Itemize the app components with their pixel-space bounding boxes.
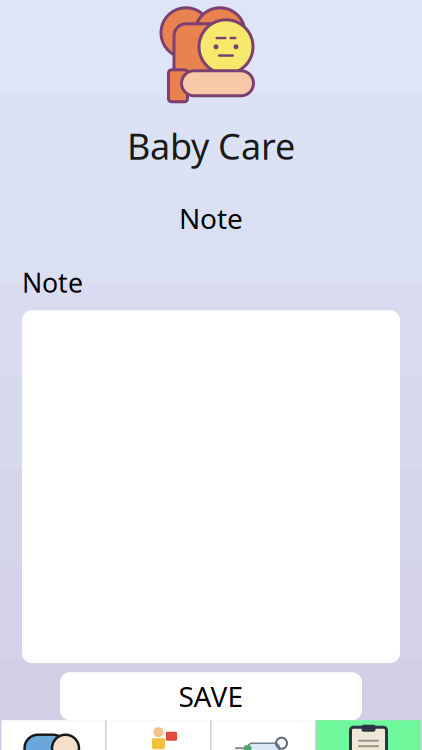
staticText: Note — [22, 265, 83, 300]
button[interactable]: Vaccines — [211, 720, 315, 750]
staticText: Note — [179, 200, 243, 237]
button[interactable]: Baby — [1, 720, 105, 750]
button[interactable]: Milestones — [106, 720, 210, 750]
staticText: SAVE — [178, 678, 243, 715]
button[interactable]: SAVE — [60, 672, 362, 720]
staticText: Baby Care — [127, 122, 295, 170]
button[interactable]: Notes — [316, 720, 420, 750]
